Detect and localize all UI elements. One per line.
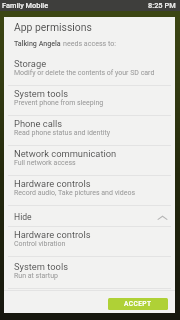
button[interactable]: Hide — [4, 205, 175, 227]
staticText: App permissions — [14, 21, 92, 33]
staticText: Hardware controls — [14, 178, 91, 189]
staticText: Record audio, Take pictures and videos — [14, 189, 136, 197]
staticText: ACCEPT — [124, 300, 152, 308]
button[interactable]: Network communication — [4, 145, 175, 175]
staticText: Full network access — [14, 159, 76, 167]
other: Collapse — [157, 213, 168, 224]
button[interactable]: System tools — [4, 258, 175, 288]
button[interactable]: Hardware controls — [4, 175, 175, 205]
staticText: Hide — [14, 212, 32, 222]
staticText: Hardware controls — [14, 229, 91, 240]
staticText: Modify or delete the contents of your SD… — [14, 69, 155, 77]
button[interactable]: Storage — [4, 55, 175, 85]
button[interactable]: System tools — [4, 85, 175, 115]
staticText: Run at startup — [14, 272, 58, 280]
staticText: needs access to: — [63, 39, 117, 47]
button[interactable]: ACCEPT — [108, 298, 168, 310]
button[interactable]: Phone calls — [4, 115, 175, 145]
button[interactable]: Hardware controls — [4, 226, 175, 256]
staticText: Phone calls — [14, 118, 63, 129]
staticText: Family Mobile — [2, 1, 49, 10]
staticText: System tools — [14, 88, 69, 99]
staticText: Talking Angela — [14, 39, 63, 47]
staticText: Prevent phone from sleeping — [14, 99, 104, 107]
staticText: System tools — [14, 261, 69, 272]
staticText: Read phone status and identity — [14, 129, 110, 137]
staticText: Storage — [14, 58, 47, 69]
staticText: Network communication — [14, 148, 117, 159]
staticText: 8:25 PM — [148, 1, 176, 10]
staticText: Control vibration — [14, 240, 66, 248]
